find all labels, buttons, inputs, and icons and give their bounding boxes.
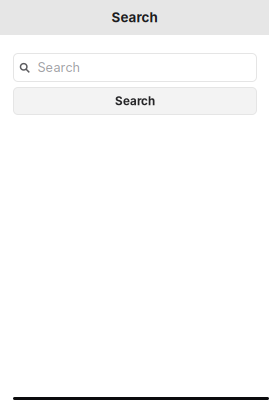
staticText: Search [115, 94, 155, 108]
button[interactable]: Search [13, 53, 256, 81]
staticText: Search [111, 9, 157, 25]
button[interactable]: Search [13, 87, 256, 114]
staticText: Search [37, 60, 79, 75]
